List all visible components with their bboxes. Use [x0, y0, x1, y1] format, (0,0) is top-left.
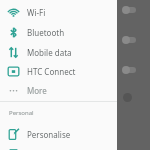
staticText: Wi-Fi	[27, 7, 46, 18]
staticText: More	[27, 85, 47, 96]
staticText: Personalise	[27, 129, 71, 140]
staticText: HTC Connect	[27, 66, 76, 77]
staticText: Bluetooth	[27, 27, 65, 38]
button[interactable]: Bluetooth	[0, 22, 117, 42]
button[interactable]: Option	[123, 93, 132, 102]
button[interactable]: Toggle off	[122, 65, 138, 74]
staticText: Mobile data	[27, 47, 72, 58]
button[interactable]: Toggle off	[122, 35, 138, 44]
button[interactable]: More	[0, 81, 117, 100]
button[interactable]: Wi-Fi	[0, 2, 117, 22]
button[interactable]: Personalise	[0, 124, 117, 144]
button[interactable]	[0, 144, 117, 150]
staticText: Personal	[9, 109, 34, 117]
button[interactable]: Mobile data	[0, 42, 117, 62]
button[interactable]: HTC Connect	[0, 62, 117, 81]
button[interactable]: Toggle off	[122, 5, 138, 14]
